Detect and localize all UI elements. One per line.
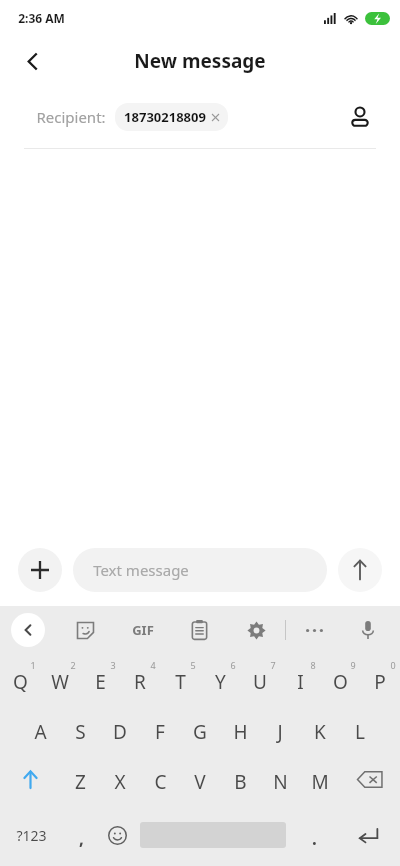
- button[interactable]: M: [300, 754, 340, 804]
- staticText: O: [333, 669, 348, 695]
- button[interactable]: Choose contact: [340, 97, 380, 137]
- staticText: V: [194, 769, 206, 795]
- button[interactable]: Backspace: [340, 754, 400, 804]
- button[interactable]: Collapse toolbar: [0, 606, 56, 654]
- staticText: 2: [70, 659, 76, 671]
- staticText: 7: [270, 659, 276, 671]
- button[interactable]: Space: [135, 804, 291, 866]
- staticText: I: [297, 669, 304, 695]
- button[interactable]: Back: [10, 39, 54, 83]
- staticText: D: [113, 719, 127, 745]
- button[interactable]: C: [140, 754, 180, 804]
- staticText: J: [277, 719, 283, 745]
- button[interactable]: .: [291, 804, 338, 866]
- staticText: Z: [75, 769, 86, 795]
- staticText: G: [193, 719, 207, 745]
- button[interactable]: Z: [60, 754, 100, 804]
- staticText: 6: [230, 659, 236, 671]
- staticText: 1: [30, 659, 36, 671]
- staticText: P: [374, 669, 386, 695]
- staticText: U: [253, 669, 267, 695]
- staticText: New message: [134, 48, 266, 74]
- button[interactable]: GIF: [114, 606, 171, 654]
- staticText: F: [155, 719, 165, 745]
- staticText: 3: [110, 659, 116, 671]
- staticText: X: [114, 769, 126, 795]
- button[interactable]: 18730218809: [115, 103, 228, 131]
- staticText: R: [134, 669, 146, 695]
- button[interactable]: P: [360, 654, 400, 704]
- button[interactable]: V: [180, 754, 220, 804]
- staticText: 18730218809: [124, 108, 206, 126]
- button[interactable]: G: [180, 704, 220, 754]
- button[interactable]: Shift: [0, 754, 60, 804]
- button[interactable]: K: [300, 704, 340, 754]
- staticText: GIF: [132, 621, 154, 639]
- staticText: 0: [390, 659, 396, 671]
- staticText: L: [355, 719, 365, 745]
- staticText: 8: [310, 659, 316, 671]
- staticText: ?123: [16, 826, 47, 845]
- staticText: 9: [350, 659, 356, 671]
- staticText: N: [273, 769, 288, 795]
- button[interactable]: Clipboard: [171, 606, 228, 654]
- staticText: 2:36 AM: [18, 10, 65, 26]
- staticText: B: [234, 769, 247, 795]
- button[interactable]: U: [240, 654, 280, 704]
- button[interactable]: A: [20, 704, 60, 754]
- button[interactable]: W: [40, 654, 80, 704]
- button[interactable]: D: [100, 704, 140, 754]
- staticText: T: [175, 669, 186, 695]
- staticText: Y: [215, 669, 226, 695]
- button[interactable]: H: [220, 704, 260, 754]
- staticText: Q: [13, 669, 28, 695]
- button[interactable]: More options: [286, 606, 343, 654]
- button[interactable]: Emoji: [99, 804, 135, 866]
- staticText: S: [75, 719, 86, 745]
- staticText: 4: [150, 659, 156, 671]
- button[interactable]: N: [260, 754, 300, 804]
- button[interactable]: T: [160, 654, 200, 704]
- staticText: Recipient:: [36, 107, 106, 127]
- button[interactable]: ?123: [0, 804, 63, 866]
- button[interactable]: Q: [0, 654, 40, 704]
- button[interactable]: I: [280, 654, 320, 704]
- button[interactable]: E: [80, 654, 120, 704]
- staticText: H: [233, 719, 248, 745]
- button[interactable]: J: [260, 704, 300, 754]
- button[interactable]: Enter: [338, 804, 400, 866]
- button[interactable]: Add attachment: [18, 548, 62, 592]
- staticText: 5: [190, 659, 196, 671]
- button[interactable]: O: [320, 654, 360, 704]
- staticText: E: [95, 669, 106, 695]
- button[interactable]: Text message: [73, 548, 327, 592]
- button[interactable]: X: [100, 754, 140, 804]
- button[interactable]: S: [60, 704, 100, 754]
- button[interactable]: ,: [63, 804, 99, 866]
- staticText: Text message: [93, 560, 189, 580]
- staticText: A: [34, 719, 47, 745]
- staticText: W: [51, 669, 69, 695]
- button[interactable]: Voice input: [343, 606, 392, 654]
- staticText: C: [154, 769, 167, 795]
- button[interactable]: B: [220, 754, 260, 804]
- staticText: .: [312, 827, 317, 850]
- button[interactable]: F: [140, 704, 180, 754]
- button[interactable]: Keyboard settings: [228, 606, 285, 654]
- button[interactable]: L: [340, 704, 380, 754]
- button[interactable]: Stickers: [56, 606, 114, 654]
- staticText: M: [311, 769, 329, 795]
- staticText: K: [314, 719, 326, 745]
- button[interactable]: R: [120, 654, 160, 704]
- button[interactable]: Y: [200, 654, 240, 704]
- button[interactable]: Send: [338, 548, 382, 592]
- staticText: ,: [79, 827, 84, 850]
